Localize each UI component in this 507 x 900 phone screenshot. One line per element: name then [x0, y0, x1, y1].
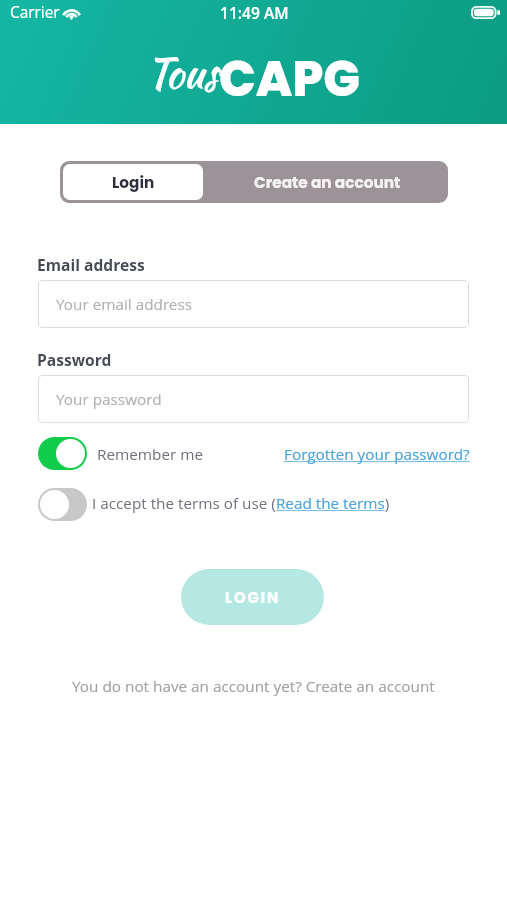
button[interactable]: LOGIN	[181, 569, 324, 625]
button[interactable]: Create an account	[203, 164, 445, 200]
button[interactable]: Your email address	[38, 280, 469, 328]
staticText: Password	[37, 349, 112, 370]
staticText: Tous	[146, 44, 218, 103]
staticText: Login	[112, 172, 155, 193]
button[interactable]: Your password	[38, 375, 469, 423]
button[interactable]: Login	[63, 164, 203, 200]
button[interactable]: Remember me	[38, 437, 87, 470]
staticText: Carrier	[10, 2, 60, 23]
staticText: Forgotten your password?	[284, 444, 470, 465]
staticText: Email address	[37, 254, 145, 275]
staticText: 11:49 AM	[220, 2, 289, 23]
staticText: CAPG	[219, 45, 360, 113]
staticText: Your email address	[56, 294, 193, 315]
staticText: Remember me	[97, 444, 204, 465]
staticText: Create an account	[254, 172, 401, 193]
staticText: Your password	[56, 389, 162, 410]
button[interactable]: Accept the terms of use	[38, 488, 87, 521]
staticText: LOGIN	[225, 587, 281, 608]
staticText: I accept the terms of use (Read the term…	[92, 493, 390, 514]
staticText: You do not have an account yet? Create a…	[72, 676, 435, 697]
button[interactable]: Forgotten your password?	[284, 444, 470, 465]
